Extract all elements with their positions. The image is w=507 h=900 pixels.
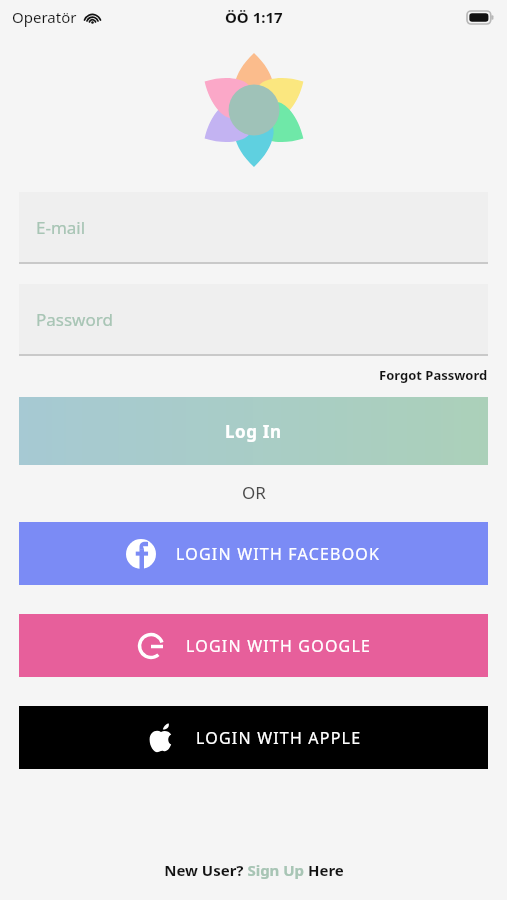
button[interactable]: Password [19, 284, 488, 356]
staticText: LOGIN WITH APPLE [196, 727, 362, 749]
staticText: LOGIN WITH FACEBOOK [176, 543, 381, 565]
button[interactable]: Google [19, 614, 488, 677]
staticText: Log In [225, 420, 282, 443]
staticText: Password [36, 308, 113, 331]
other: Google [136, 631, 166, 661]
other: Apple [146, 723, 176, 753]
staticText: Operatör [12, 7, 77, 27]
staticText: ÖÖ 1:17 [225, 7, 283, 27]
button[interactable]: Facebook [19, 522, 488, 585]
staticText: LOGIN WITH GOOGLE [186, 635, 372, 657]
staticText: OR [242, 481, 266, 504]
button[interactable]: Forgot Password [379, 366, 488, 384]
button[interactable]: Log In [19, 397, 488, 465]
staticText: E-mail [36, 216, 86, 239]
button[interactable]: E-mail [19, 192, 488, 264]
button[interactable]: Apple [19, 706, 488, 769]
other: Facebook [126, 539, 156, 569]
button[interactable]: New User? Sign Up Here [164, 860, 344, 880]
